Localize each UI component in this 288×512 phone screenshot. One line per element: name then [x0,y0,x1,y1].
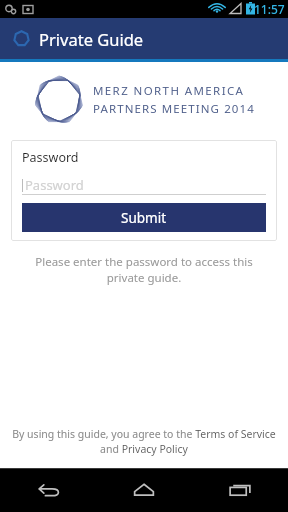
staticText: PARTNERS MEETING 2014 [93,101,255,117]
button[interactable]: Recent apps [192,468,288,512]
button[interactable]: Password [22,175,266,195]
button[interactable]: Back [0,468,96,512]
staticText: MERZ NORTH AMERICA [93,83,245,99]
other: Private Guide logo [13,30,30,47]
staticText: Password [25,176,84,194]
staticText: Private Guide [39,28,144,50]
button[interactable]: By using this guide, you agree to the Te… [8,427,280,456]
staticText: 11:57 [254,1,285,17]
staticText: Password [22,149,79,166]
button[interactable]: Home [96,468,192,512]
staticText: Please enter the password to access this… [16,254,272,285]
button[interactable]: Submit [22,203,266,232]
staticText: Submit [121,209,167,227]
